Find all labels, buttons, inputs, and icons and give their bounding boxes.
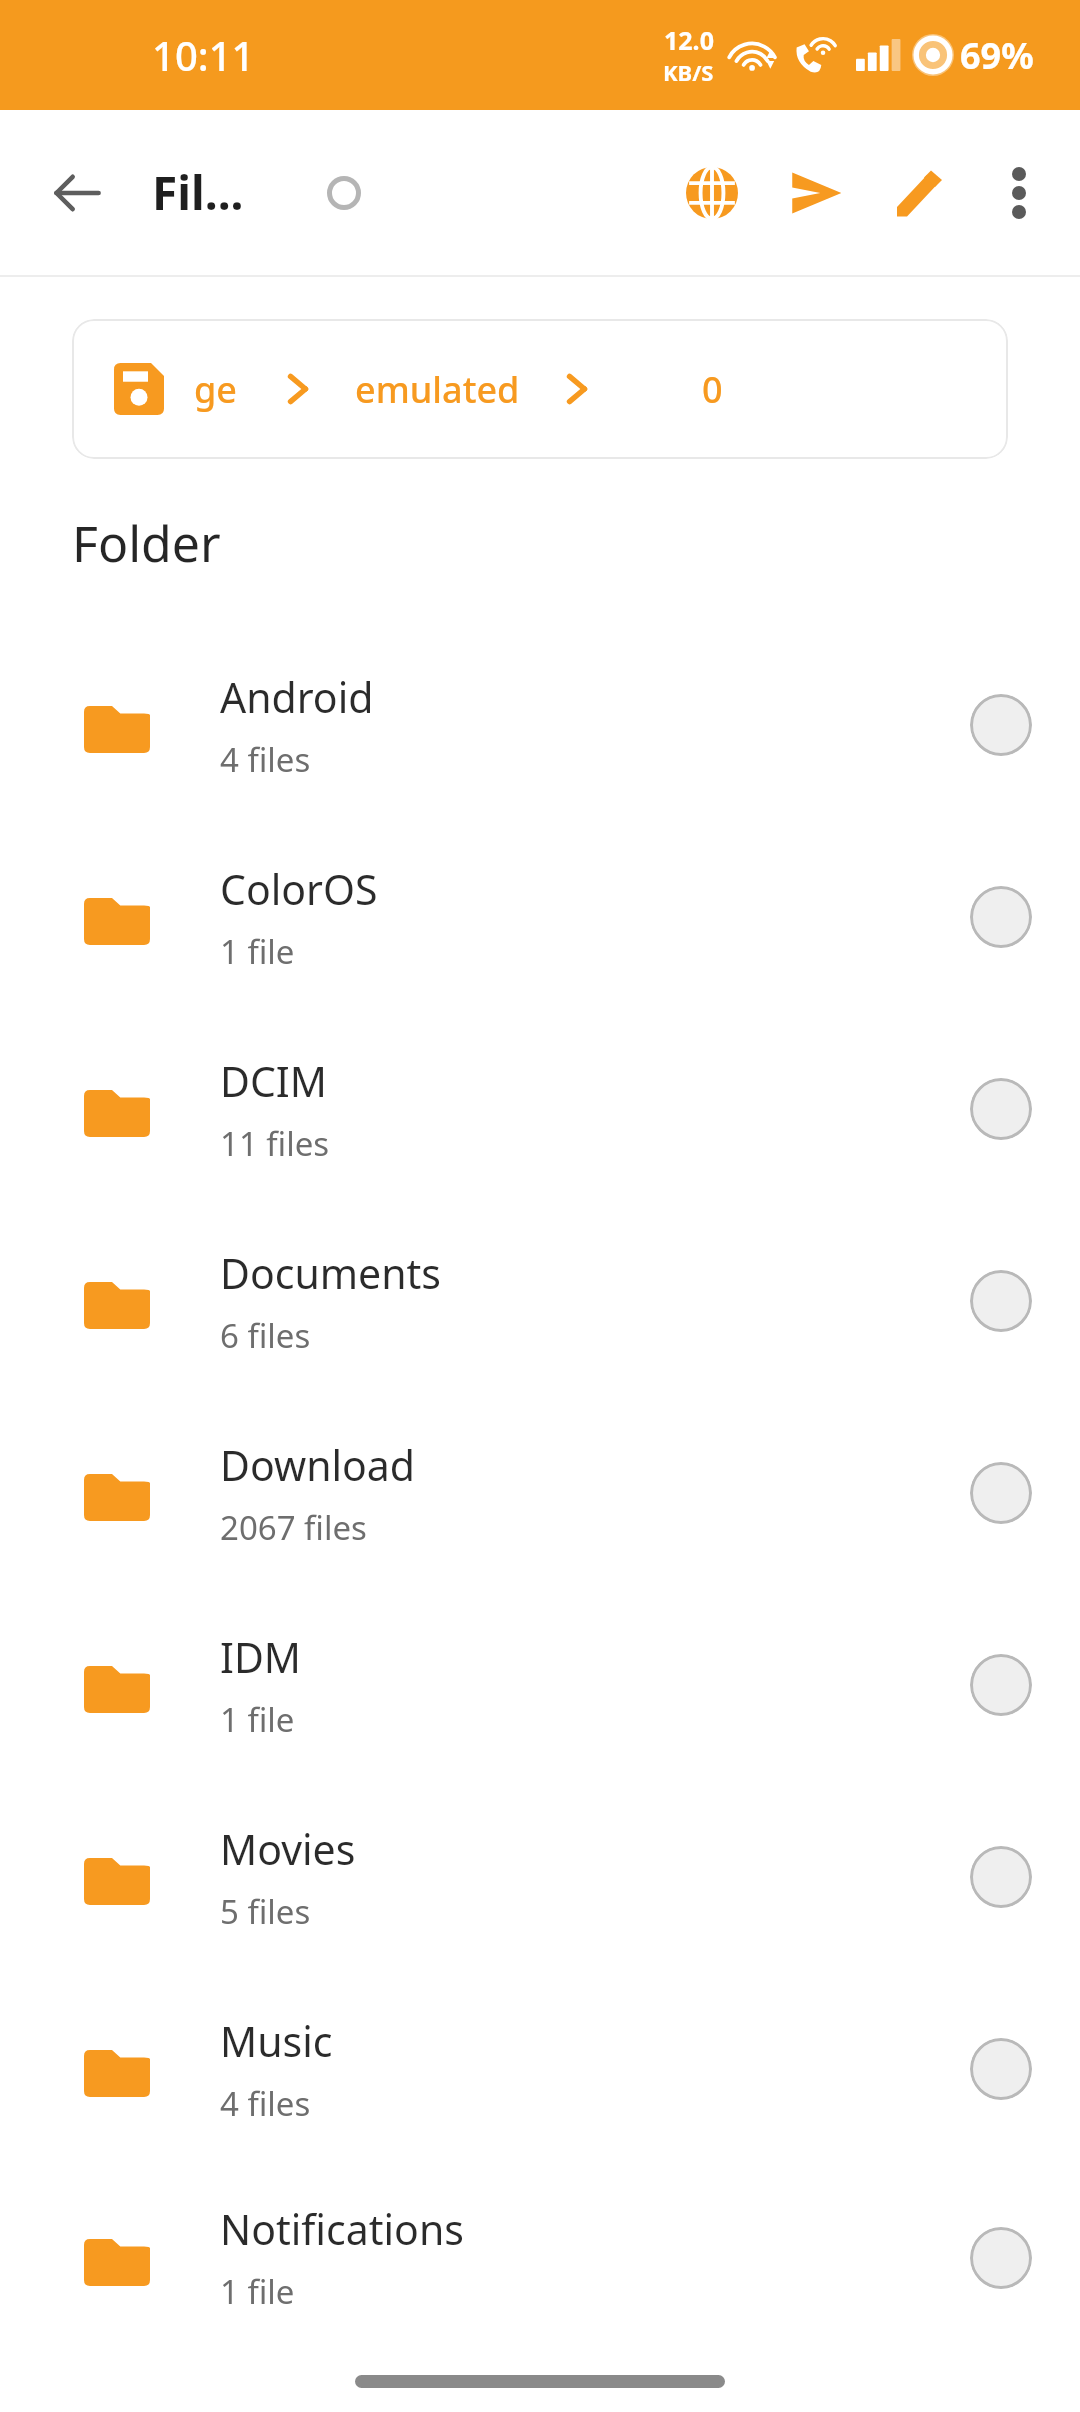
staticText: 69% [960,31,1034,80]
button[interactable]: Edit [868,141,972,245]
staticText: 10:11 [152,28,255,82]
staticText: 2067 files [220,1505,367,1550]
staticText: KB/S [663,57,714,87]
button[interactable]: Select all [304,153,384,233]
staticText: Folder [72,509,221,577]
staticText: ge [194,365,237,414]
staticText: 0 [702,365,723,414]
button[interactable]: DCIM [0,1013,1080,1205]
staticText: Fil... [152,161,244,224]
staticText: 12.0 [664,23,714,57]
staticText: 1 file [220,2269,295,2314]
button[interactable]: Download [0,1397,1080,1589]
button[interactable]: Select ColorOS [946,862,1056,972]
staticText: Movies [220,1821,356,1877]
staticText: 1 file [220,929,295,974]
button[interactable]: Music [0,1973,1080,2165]
button[interactable]: Select Movies [946,1822,1056,1932]
staticText: Notifications [220,2201,464,2257]
button[interactable]: IDM [0,1589,1080,1781]
button[interactable]: Notifications [0,2165,1080,2350]
staticText: emulated [355,365,520,414]
staticText: Music [220,2013,333,2069]
staticText: 5 files [220,1889,311,1934]
button[interactable]: Select Music [946,2014,1056,2124]
button[interactable]: Select IDM [946,1630,1056,1740]
button[interactable]: ColorOS [0,821,1080,1013]
button[interactable]: Select Notifications [946,2203,1056,2313]
button[interactable]: ge [72,319,1008,459]
button[interactable]: Select DCIM [946,1054,1056,1164]
button[interactable]: Network [660,141,764,245]
staticText: DCIM [220,1053,327,1109]
staticText: IDM [220,1629,302,1685]
button[interactable]: Select Download [946,1438,1056,1548]
staticText: 4 files [220,2081,311,2126]
button[interactable]: More options [972,146,1066,240]
button[interactable]: Movies [0,1781,1080,1973]
staticText: 4 files [220,737,311,782]
staticText: Download [220,1437,416,1493]
button[interactable]: Android [0,629,1080,821]
button[interactable]: Back [22,138,132,248]
staticText: ColorOS [220,861,378,917]
staticText: 6 files [220,1313,311,1358]
button[interactable]: Send [764,141,868,245]
button[interactable]: Documents [0,1205,1080,1397]
staticText: Android [220,669,374,725]
button[interactable]: Select Documents [946,1246,1056,1356]
button[interactable]: Select Android [946,670,1056,780]
staticText: 11 files [220,1121,330,1166]
staticText: 1 file [220,1697,295,1742]
staticText: Documents [220,1245,441,1301]
